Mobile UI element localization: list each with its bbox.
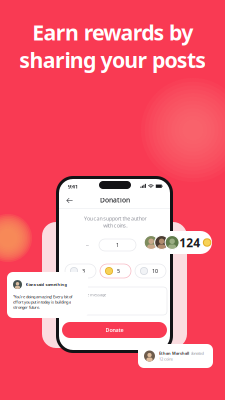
staticText: −	[85, 241, 89, 249]
staticText: You can support the author with coins.	[84, 215, 146, 229]
button[interactable]: 1	[99, 239, 136, 251]
staticText: sharing your posts	[19, 45, 206, 74]
button[interactable]: 3	[65, 264, 96, 278]
staticText: Donation	[100, 196, 130, 204]
button[interactable]: Back	[66, 196, 73, 204]
staticText: 124	[179, 234, 200, 250]
staticText: 9:41	[68, 183, 78, 190]
button[interactable]: 10	[135, 264, 166, 278]
staticText: Ethan Marshall	[159, 350, 189, 356]
button[interactable]: Increase	[143, 241, 152, 249]
button[interactable]: Leave a nice message	[62, 287, 167, 315]
staticText: Earn rewards by	[32, 18, 193, 46]
button[interactable]: 5	[100, 264, 131, 278]
staticText: 10	[152, 267, 158, 275]
staticText: donated	[190, 350, 203, 356]
staticText: “You’re doing amazing! Every bit of effo…	[13, 294, 72, 310]
staticText: Donate	[105, 326, 123, 334]
staticText: +	[145, 241, 149, 249]
staticText: 12 coins	[159, 356, 173, 361]
staticText: 3	[82, 267, 85, 275]
staticText: 5	[117, 267, 120, 275]
staticText: 1	[116, 241, 119, 249]
button[interactable]: Decrease	[83, 241, 92, 249]
staticText: Leave a nice message	[68, 292, 106, 297]
staticText: Kiara said something	[25, 282, 67, 287]
button[interactable]: Donate	[62, 322, 167, 338]
